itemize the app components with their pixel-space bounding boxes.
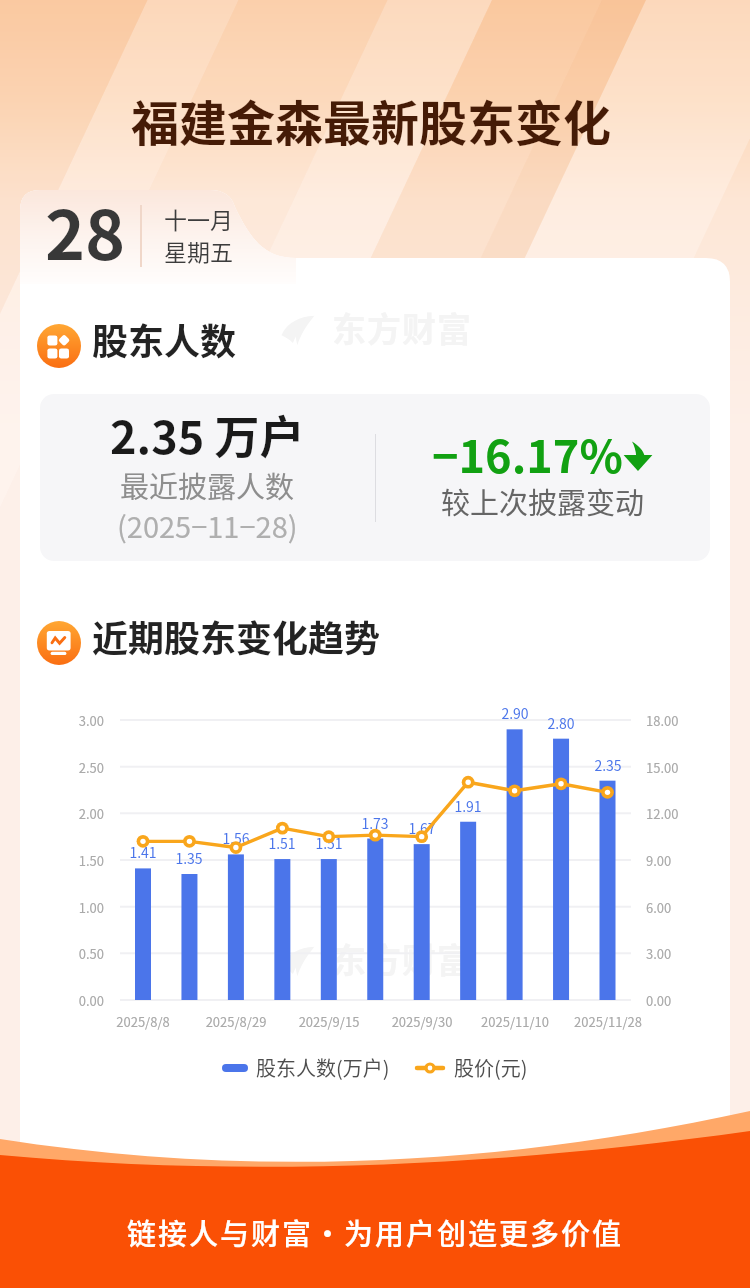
- staticText: 1.50: [44, 851, 104, 870]
- staticText: 2.90: [485, 703, 545, 723]
- staticText: 2025/9/15: [279, 1012, 379, 1031]
- staticText: 15.00: [646, 758, 706, 777]
- staticText: 东方财富: [332, 303, 472, 352]
- staticText: (2025−11−28): [117, 504, 298, 546]
- staticText: 0.00: [646, 991, 706, 1010]
- staticText: 1.51: [299, 833, 359, 853]
- staticText: 东方财富: [332, 934, 472, 983]
- staticText: 2.80: [531, 713, 591, 733]
- staticText: 1.35: [159, 848, 219, 868]
- staticText: 1.67: [392, 818, 452, 838]
- staticText: 18.00: [646, 711, 706, 730]
- staticText: 12.00: [646, 804, 706, 823]
- staticText: 0.00: [44, 991, 104, 1010]
- other: 近期股东变化趋势: [37, 621, 81, 665]
- staticText: 1.51: [252, 833, 312, 853]
- staticText: 链接人与财富·为用户创造更多价值: [0, 1211, 750, 1253]
- button[interactable]: 近期股东变化趋势: [37, 617, 381, 669]
- staticText: 1.41: [113, 842, 173, 862]
- staticText: 1.91: [438, 796, 498, 816]
- staticText: −16.17%: [432, 421, 623, 486]
- other: 股东人数: [37, 324, 81, 368]
- staticText: 十一月: [164, 202, 233, 235]
- staticText: 28: [45, 181, 126, 279]
- staticText: 1.73: [345, 813, 405, 833]
- staticText: 2025/9/30: [372, 1012, 472, 1031]
- staticText: 福建金森最新股东变化: [0, 85, 746, 155]
- staticText: 星期五: [164, 234, 233, 267]
- staticText: 6.00: [646, 898, 706, 917]
- staticText: 2.35: [578, 755, 638, 775]
- staticText: 2025/11/28: [558, 1012, 658, 1031]
- staticText: 股东人数: [92, 313, 237, 365]
- staticText: 2.00: [44, 804, 104, 823]
- staticText: 较上次披露变动: [441, 480, 645, 522]
- staticText: 3.00: [646, 944, 706, 963]
- staticText: 股东人数(万户): [256, 1053, 390, 1082]
- staticText: 2025/8/8: [93, 1012, 193, 1031]
- button[interactable]: 股东人数: [37, 320, 237, 372]
- staticText: 近期股东变化趋势: [92, 610, 381, 662]
- staticText: 1.56: [206, 828, 266, 848]
- staticText: 1.00: [44, 898, 104, 917]
- staticText: 最近披露人数: [120, 464, 295, 506]
- staticText: 3.00: [44, 711, 104, 730]
- staticText: 股价(元): [454, 1053, 528, 1082]
- staticText: 9.00: [646, 851, 706, 870]
- staticText: 0.50: [44, 944, 104, 963]
- staticText: 2025/11/10: [465, 1012, 565, 1031]
- staticText: 2025/8/29: [186, 1012, 286, 1031]
- staticText: 2.35 万户: [110, 402, 305, 467]
- staticText: 2.50: [44, 758, 104, 777]
